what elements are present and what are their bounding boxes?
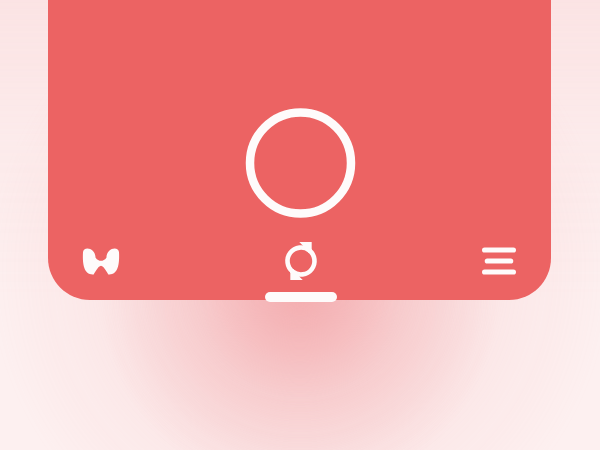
button[interactable]: Menu: [471, 233, 527, 289]
button[interactable]: Shutter: [245, 108, 355, 218]
button[interactable]: Refresh: [273, 233, 329, 289]
button[interactable]: Games: [73, 233, 129, 289]
